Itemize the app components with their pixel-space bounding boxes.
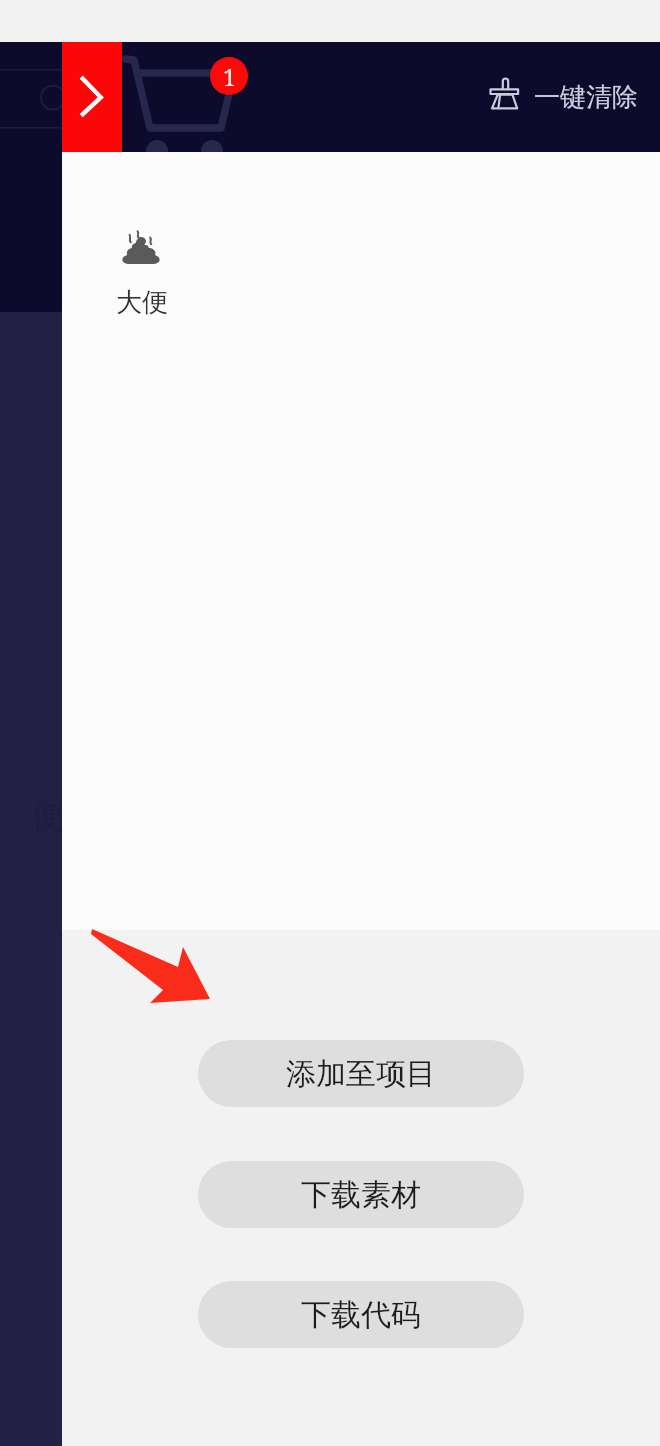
staticText: 大便 bbox=[116, 286, 168, 319]
button[interactable]: 下载素材 bbox=[198, 1161, 524, 1228]
staticText: 一键清除 bbox=[534, 81, 638, 114]
button[interactable]: 大便 bbox=[98, 208, 198, 347]
button[interactable]: Next bbox=[62, 42, 122, 152]
staticText: 1 bbox=[223, 61, 236, 92]
button[interactable]: 一键清除 bbox=[482, 80, 638, 114]
staticText: 下载代码 bbox=[301, 1296, 421, 1334]
staticText: 便 bbox=[32, 797, 63, 836]
staticText: 添加至项目 bbox=[286, 1055, 436, 1093]
button[interactable]: 添加至项目 bbox=[198, 1040, 524, 1107]
staticText: 下载素材 bbox=[301, 1176, 421, 1214]
button[interactable]: 下载代码 bbox=[198, 1281, 524, 1348]
button[interactable]: Shopping cart bbox=[117, 42, 247, 152]
